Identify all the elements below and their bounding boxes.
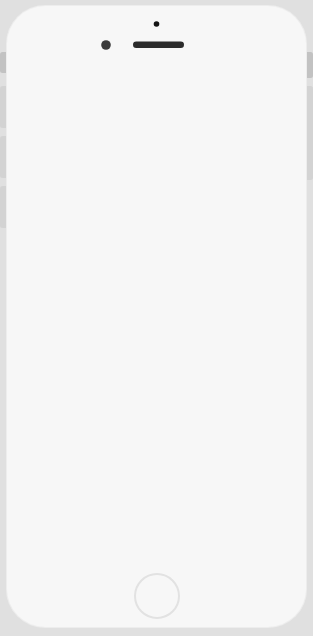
button[interactable]: Phone device mockup <box>0 0 313 636</box>
